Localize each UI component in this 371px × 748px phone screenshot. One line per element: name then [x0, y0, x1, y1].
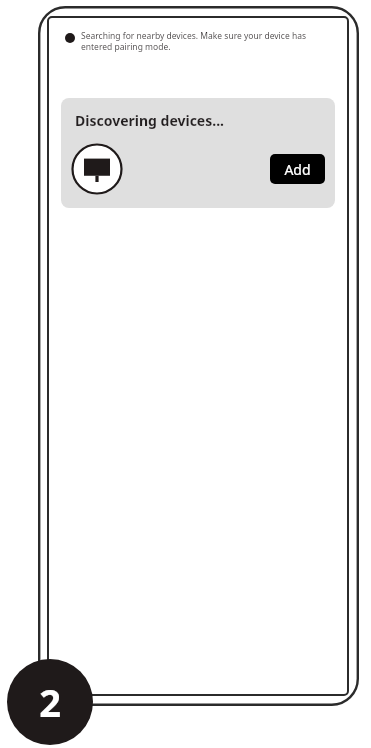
staticText: Add [284, 160, 311, 179]
button[interactable]: Device [71, 143, 123, 195]
button[interactable]: Step 2 [7, 659, 93, 745]
staticText: 2 [39, 676, 61, 728]
button[interactable]: Add [270, 154, 325, 184]
staticText: Searching for nearby devices. Make sure … [81, 30, 335, 52]
button[interactable]: Discovering devices... [61, 98, 335, 208]
staticText: Discovering devices... [75, 111, 225, 130]
